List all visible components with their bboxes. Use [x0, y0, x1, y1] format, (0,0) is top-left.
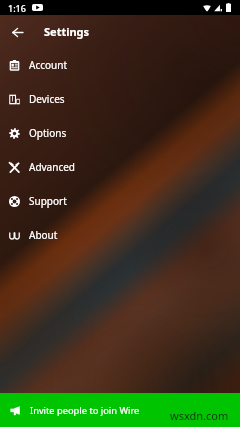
staticText: Settings	[44, 24, 90, 39]
button[interactable]: Options	[0, 116, 240, 150]
staticText: Devices	[29, 92, 65, 106]
staticText: Invite people to join Wire	[30, 404, 140, 417]
staticText: Support	[29, 194, 67, 208]
staticText: wsxdn.com	[170, 408, 229, 423]
staticText: Account	[29, 58, 68, 72]
staticText: Advanced	[29, 160, 75, 174]
button[interactable]: About	[0, 218, 240, 252]
button[interactable]: Devices	[0, 82, 240, 116]
button[interactable]: Account	[0, 48, 240, 82]
button[interactable]: Support	[0, 184, 240, 218]
button[interactable]: Advanced	[0, 150, 240, 184]
staticText: 1:16	[8, 2, 26, 14]
staticText: Options	[29, 126, 67, 140]
button[interactable]: Invite people to join Wire	[0, 393, 240, 427]
button[interactable]: Back	[2, 17, 32, 47]
staticText: About	[29, 228, 58, 242]
